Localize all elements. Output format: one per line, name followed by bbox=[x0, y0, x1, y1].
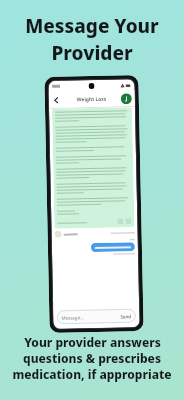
staticText: medication, if appropriate bbox=[12, 366, 172, 382]
staticText: J bbox=[126, 95, 128, 102]
staticText: Your provider answers bbox=[24, 334, 161, 350]
staticText: questions & prescribes bbox=[23, 350, 161, 366]
button[interactable]: Send bbox=[120, 313, 131, 319]
button[interactable]: React to message bbox=[117, 218, 123, 224]
staticText: Weight Loss bbox=[77, 96, 107, 103]
staticText: Message... bbox=[61, 314, 84, 321]
button[interactable]: React to message bbox=[125, 218, 131, 224]
button[interactable]: Message... bbox=[57, 309, 135, 324]
staticText: Message Your bbox=[25, 13, 159, 39]
button[interactable]: Provider profile bbox=[121, 93, 132, 104]
staticText: Provider bbox=[51, 40, 133, 66]
button[interactable]: Back bbox=[51, 95, 62, 106]
